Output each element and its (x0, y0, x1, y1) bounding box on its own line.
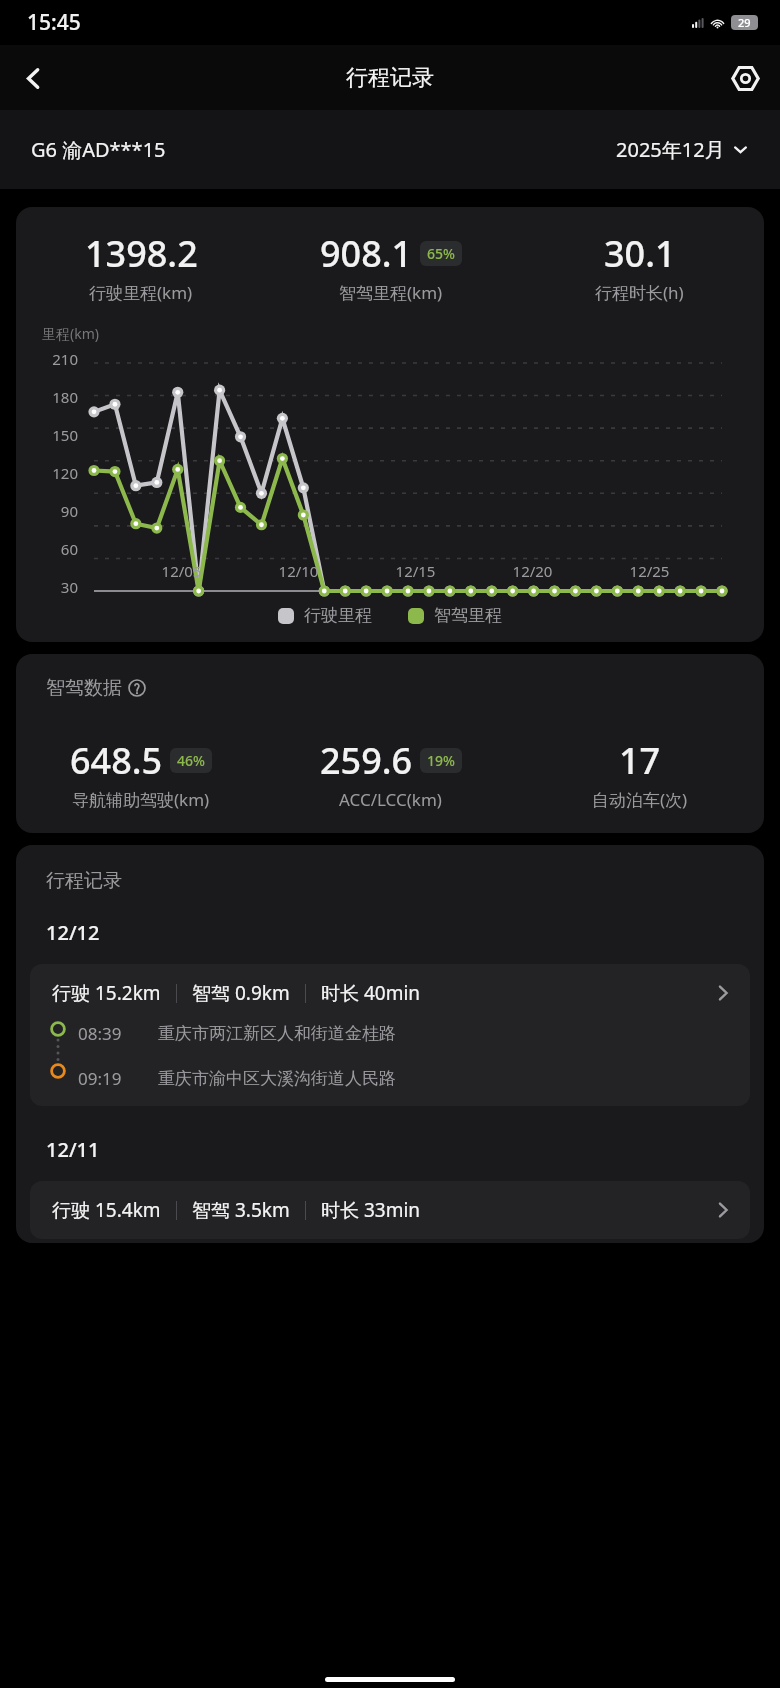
button[interactable]: 行驶里程 (278, 605, 372, 626)
staticText: 30.1 (604, 229, 676, 278)
staticText: 46% (177, 751, 205, 770)
staticText: 12/25 (591, 561, 708, 581)
staticText: 里程(km) (42, 324, 99, 343)
staticText: 120 (30, 463, 78, 483)
staticText: 19% (427, 751, 455, 770)
other: Info (128, 679, 146, 697)
staticText: 智驾里程 (434, 605, 502, 626)
staticText: 15:45 (27, 8, 81, 37)
staticText: 时长 40min (321, 980, 421, 1006)
staticText: 2025年12月 (616, 136, 725, 163)
staticText: 150 (30, 425, 78, 445)
staticText: 行程记录 (46, 869, 122, 893)
staticText: 时长 33min (321, 1197, 421, 1223)
staticText: 12/05 (123, 561, 240, 581)
staticText: 29 (738, 15, 751, 30)
staticText: 智驾 3.5km (192, 1197, 290, 1223)
staticText: 行驶里程(km) (89, 281, 193, 304)
button[interactable]: 智驾数据 (16, 654, 764, 833)
staticText: 行程记录 (346, 64, 434, 92)
button[interactable]: 行驶 15.4km (30, 1181, 750, 1239)
staticText: 重庆市渝中区大溪沟街道人民路 (158, 1068, 396, 1089)
other: Open trip (714, 1201, 732, 1219)
staticText: 65% (427, 244, 455, 263)
staticText: 12/10 (240, 561, 357, 581)
staticText: G6 渝AD***15 (31, 136, 166, 163)
staticText: 智驾里程(km) (339, 281, 443, 304)
staticText: 90 (30, 501, 78, 521)
staticText: 12/12 (46, 919, 100, 946)
staticText: 17 (619, 736, 661, 785)
staticText: ACC/LCC(km) (339, 788, 442, 811)
staticText: 行驶里程 (304, 605, 372, 626)
staticText: 648.5 (70, 736, 163, 785)
staticText: 180 (30, 387, 78, 407)
staticText: 重庆市两江新区人和街道金桂路 (158, 1023, 396, 1044)
staticText: 09:19 (78, 1067, 144, 1090)
staticText: 1398.2 (85, 229, 198, 278)
staticText: 259.6 (320, 736, 413, 785)
button[interactable]: 2025年12月 (610, 130, 754, 169)
staticText: 行驶 15.2km (52, 980, 161, 1006)
staticText: 智驾数据 (46, 676, 122, 700)
button[interactable]: 智驾里程 (408, 605, 502, 626)
button[interactable]: 1398.2 (16, 207, 764, 642)
staticText: 自动泊车(次) (592, 788, 688, 811)
staticText: 行驶 15.4km (52, 1197, 161, 1223)
staticText: 智驾 0.9km (192, 980, 290, 1006)
staticText: 12/11 (46, 1136, 100, 1163)
staticText: 导航辅助驾驶(km) (72, 788, 210, 811)
staticText: 08:39 (78, 1022, 144, 1045)
other: Open trip (714, 984, 732, 1002)
staticText: 30 (30, 577, 78, 597)
staticText: 12/15 (357, 561, 474, 581)
staticText: 12/20 (474, 561, 591, 581)
staticText: 行程时长(h) (595, 281, 684, 304)
staticText: 908.1 (320, 229, 413, 278)
button[interactable]: Settings (720, 53, 770, 103)
staticText: 60 (30, 539, 78, 559)
staticText: 210 (30, 349, 78, 369)
button[interactable]: 行驶 15.2km (30, 964, 750, 1106)
button[interactable]: Back (8, 53, 58, 103)
